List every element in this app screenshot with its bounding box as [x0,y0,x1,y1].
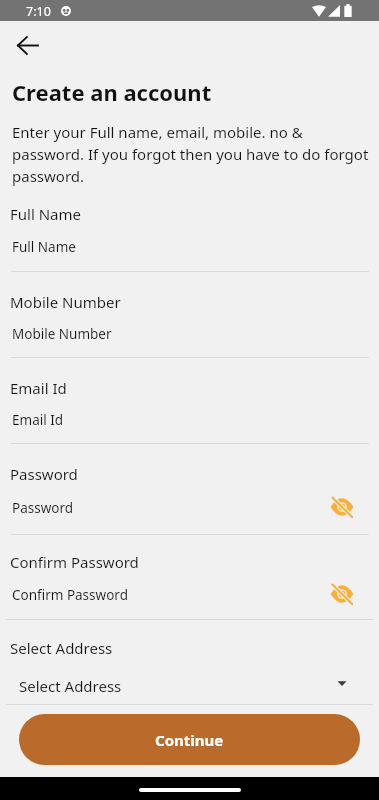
button[interactable]: Back [5,23,50,68]
staticText: Select Address [19,676,122,696]
staticText: Full Name [10,204,81,224]
staticText: Password [12,499,74,517]
button[interactable]: Continue [19,714,360,765]
button[interactable]: Select Address [0,668,379,702]
staticText: Select Address [10,638,113,658]
button[interactable]: Email Id [0,403,379,437]
button[interactable]: Mobile Number [0,317,379,351]
button[interactable]: Open address list [333,674,351,692]
button[interactable]: Show password [330,495,354,519]
staticText: Confirm Password [12,586,128,604]
button[interactable]: Confirm Password [0,578,379,612]
staticText: Email Id [12,411,64,429]
staticText: Enter your Full name, email, mobile. no … [12,122,371,187]
staticText: Create an account [12,77,212,107]
staticText: Mobile Number [10,292,121,312]
staticText: Continue [155,730,224,750]
staticText: 7:10 [26,3,51,20]
button[interactable]: Password [0,491,379,525]
staticText: Email Id [10,378,67,398]
staticText: Password [10,464,78,484]
staticText: Full Name [12,238,76,256]
staticText: Mobile Number [12,325,112,343]
button[interactable]: Full Name [0,230,379,264]
button[interactable]: Show password [330,582,354,606]
staticText: Confirm Password [10,552,139,572]
